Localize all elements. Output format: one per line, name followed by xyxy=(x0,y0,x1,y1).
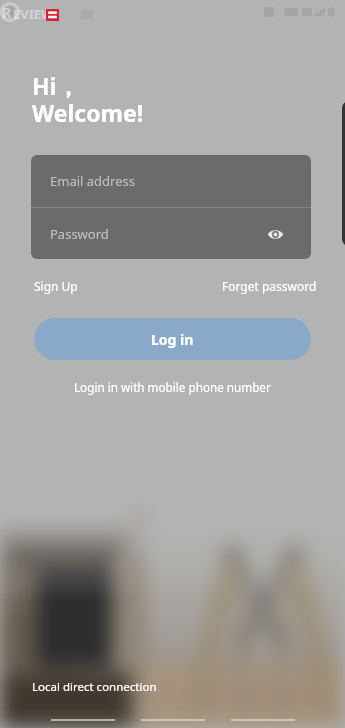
button[interactable]: Password xyxy=(31,208,311,259)
button[interactable]: Login in with mobile phone number xyxy=(74,374,271,400)
staticText: Local direct connection xyxy=(32,679,157,695)
button[interactable]: Forget password xyxy=(222,274,317,298)
staticText: EVIEW xyxy=(13,5,54,23)
button[interactable]: Sign Up xyxy=(34,274,78,298)
staticText: Password xyxy=(50,225,109,243)
button[interactable]: Show password xyxy=(260,219,290,249)
staticText: Forget password xyxy=(222,278,317,294)
staticText: Sign Up xyxy=(34,278,78,294)
staticText: Email address xyxy=(50,172,135,190)
staticText: Hi， xyxy=(32,70,80,101)
button[interactable]: Email address xyxy=(31,155,311,207)
staticText: Login in with mobile phone number xyxy=(74,379,271,395)
button[interactable]: Log in xyxy=(34,318,311,360)
staticText: Log in xyxy=(151,330,194,349)
button[interactable]: Local direct connection xyxy=(32,679,157,695)
staticText: Welcome! xyxy=(32,97,144,128)
staticText: R xyxy=(2,3,12,22)
